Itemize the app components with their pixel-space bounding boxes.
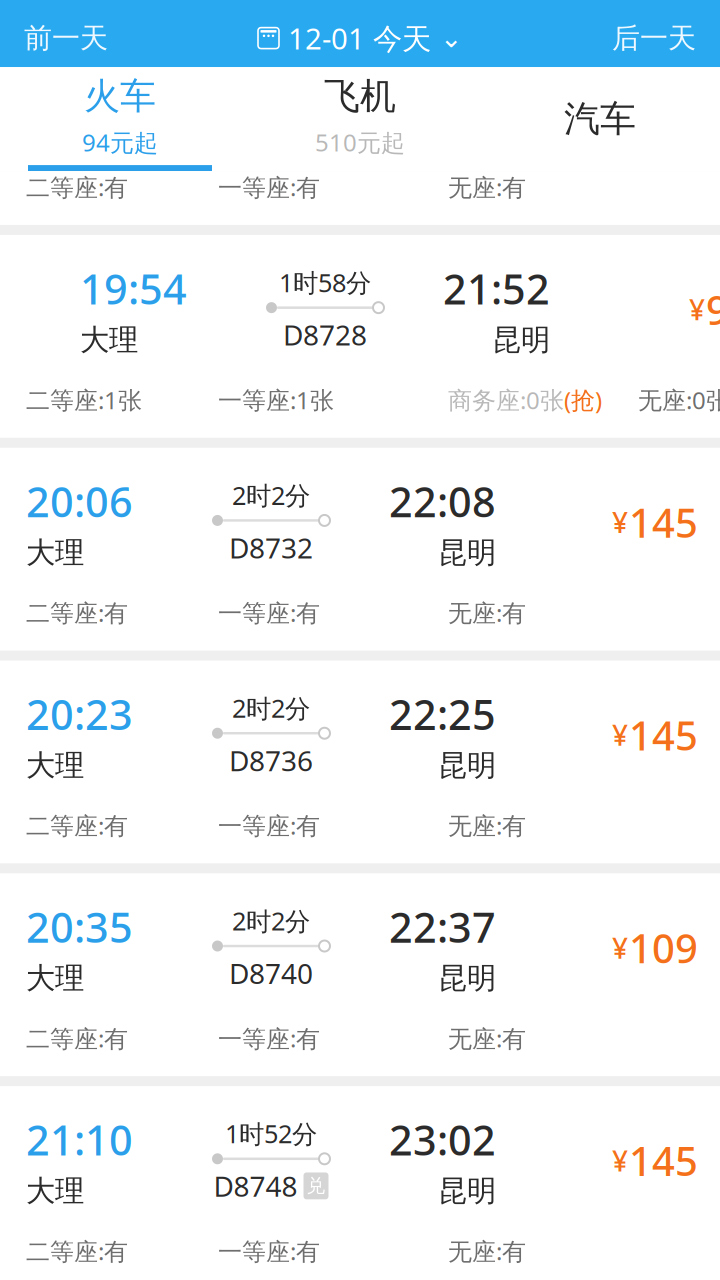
staticText: 大理: [26, 1173, 84, 1209]
staticText: 一等座:1张: [218, 384, 334, 416]
staticText: 20:06: [26, 474, 133, 529]
staticText: 21:52: [443, 261, 550, 316]
staticText: 145: [629, 1134, 698, 1187]
staticText: D8736: [229, 742, 313, 779]
staticText: 二等座:有: [26, 171, 128, 203]
staticText: 昆明: [438, 960, 496, 996]
button[interactable]: 后一天: [588, 9, 720, 67]
button[interactable]: 火车: [0, 67, 240, 171]
staticText: 2时2分: [232, 904, 310, 937]
staticText: 二等座:有: [26, 597, 128, 629]
staticText: ¥: [612, 504, 628, 541]
staticText: 昆明: [492, 322, 550, 358]
staticText: 一等座:有: [218, 1235, 320, 1267]
staticText: (抢): [564, 384, 602, 416]
button[interactable]: 20:06: [0, 448, 720, 651]
staticText: 二等座:有: [26, 1235, 128, 1267]
staticText: ¥: [612, 716, 628, 754]
staticText: 无座:有: [448, 809, 526, 841]
staticText: 1时58分: [279, 265, 371, 299]
staticText: 21:10: [26, 1112, 133, 1167]
staticText: 昆明: [438, 1173, 496, 1209]
staticText: 2时2分: [232, 691, 310, 725]
staticText: 前一天: [24, 21, 108, 55]
staticText: 无座:有: [448, 1235, 526, 1267]
staticText: 无座:有: [448, 597, 526, 629]
staticText: 22:37: [389, 899, 496, 954]
staticText: 一等座:有: [218, 171, 320, 203]
button[interactable]: 前一天: [0, 9, 132, 67]
staticText: 一等座:有: [218, 809, 320, 841]
staticText: ⌄: [440, 23, 462, 53]
staticText: 一等座:有: [218, 597, 320, 629]
staticText: 大理: [26, 535, 84, 571]
staticText: 12-01 今天: [288, 19, 431, 58]
button[interactable]: 20:35: [0, 873, 720, 1076]
staticText: 23:02: [389, 1112, 496, 1167]
staticText: 二等座:有: [26, 1022, 128, 1054]
staticText: ¥: [689, 291, 705, 328]
staticText: 无座:0张: [638, 384, 720, 416]
staticText: 大理: [80, 322, 138, 358]
staticText: 汽车: [564, 97, 636, 141]
staticText: 一等座:有: [218, 1022, 320, 1054]
button[interactable]: 21:10: [0, 1086, 720, 1280]
staticText: 商务座:0张: [448, 384, 564, 416]
staticText: 22:08: [389, 474, 496, 529]
staticText: 昆明: [438, 535, 496, 571]
staticText: 145: [629, 496, 698, 549]
staticText: 510元起: [315, 126, 405, 158]
button[interactable]: 20:23: [0, 660, 720, 863]
staticText: D8728: [283, 316, 367, 353]
staticText: 无座:有: [448, 171, 526, 203]
staticText: 20:35: [26, 899, 133, 954]
staticText: 二等座:有: [26, 809, 128, 841]
staticText: 兑: [306, 1174, 325, 1197]
button[interactable]: 12-01 今天: [258, 9, 462, 67]
staticText: D8748: [213, 1167, 297, 1204]
staticText: 大理: [26, 960, 84, 996]
staticText: 94: [706, 283, 720, 336]
staticText: 火车: [84, 74, 156, 118]
staticText: 昆明: [438, 747, 496, 783]
staticText: ¥: [612, 1142, 628, 1179]
staticText: 无座:有: [448, 1022, 526, 1054]
staticText: 20:23: [26, 686, 133, 741]
staticText: 1时52分: [225, 1117, 317, 1150]
button[interactable]: 19:54: [0, 235, 720, 438]
staticText: 大理: [26, 747, 84, 783]
staticText: ¥: [612, 929, 628, 966]
staticText: 109: [629, 921, 698, 974]
staticText: 94元起: [82, 126, 158, 158]
staticText: D8732: [229, 529, 313, 566]
staticText: 22:25: [389, 686, 496, 741]
staticText: 后一天: [612, 21, 696, 55]
staticText: 145: [629, 708, 698, 761]
staticText: 19:54: [80, 261, 187, 316]
staticText: 飞机: [324, 74, 396, 118]
staticText: D8740: [229, 954, 313, 992]
staticText: 二等座:1张: [26, 384, 142, 416]
button[interactable]: 飞机: [240, 67, 480, 171]
staticText: 2时2分: [232, 478, 310, 512]
